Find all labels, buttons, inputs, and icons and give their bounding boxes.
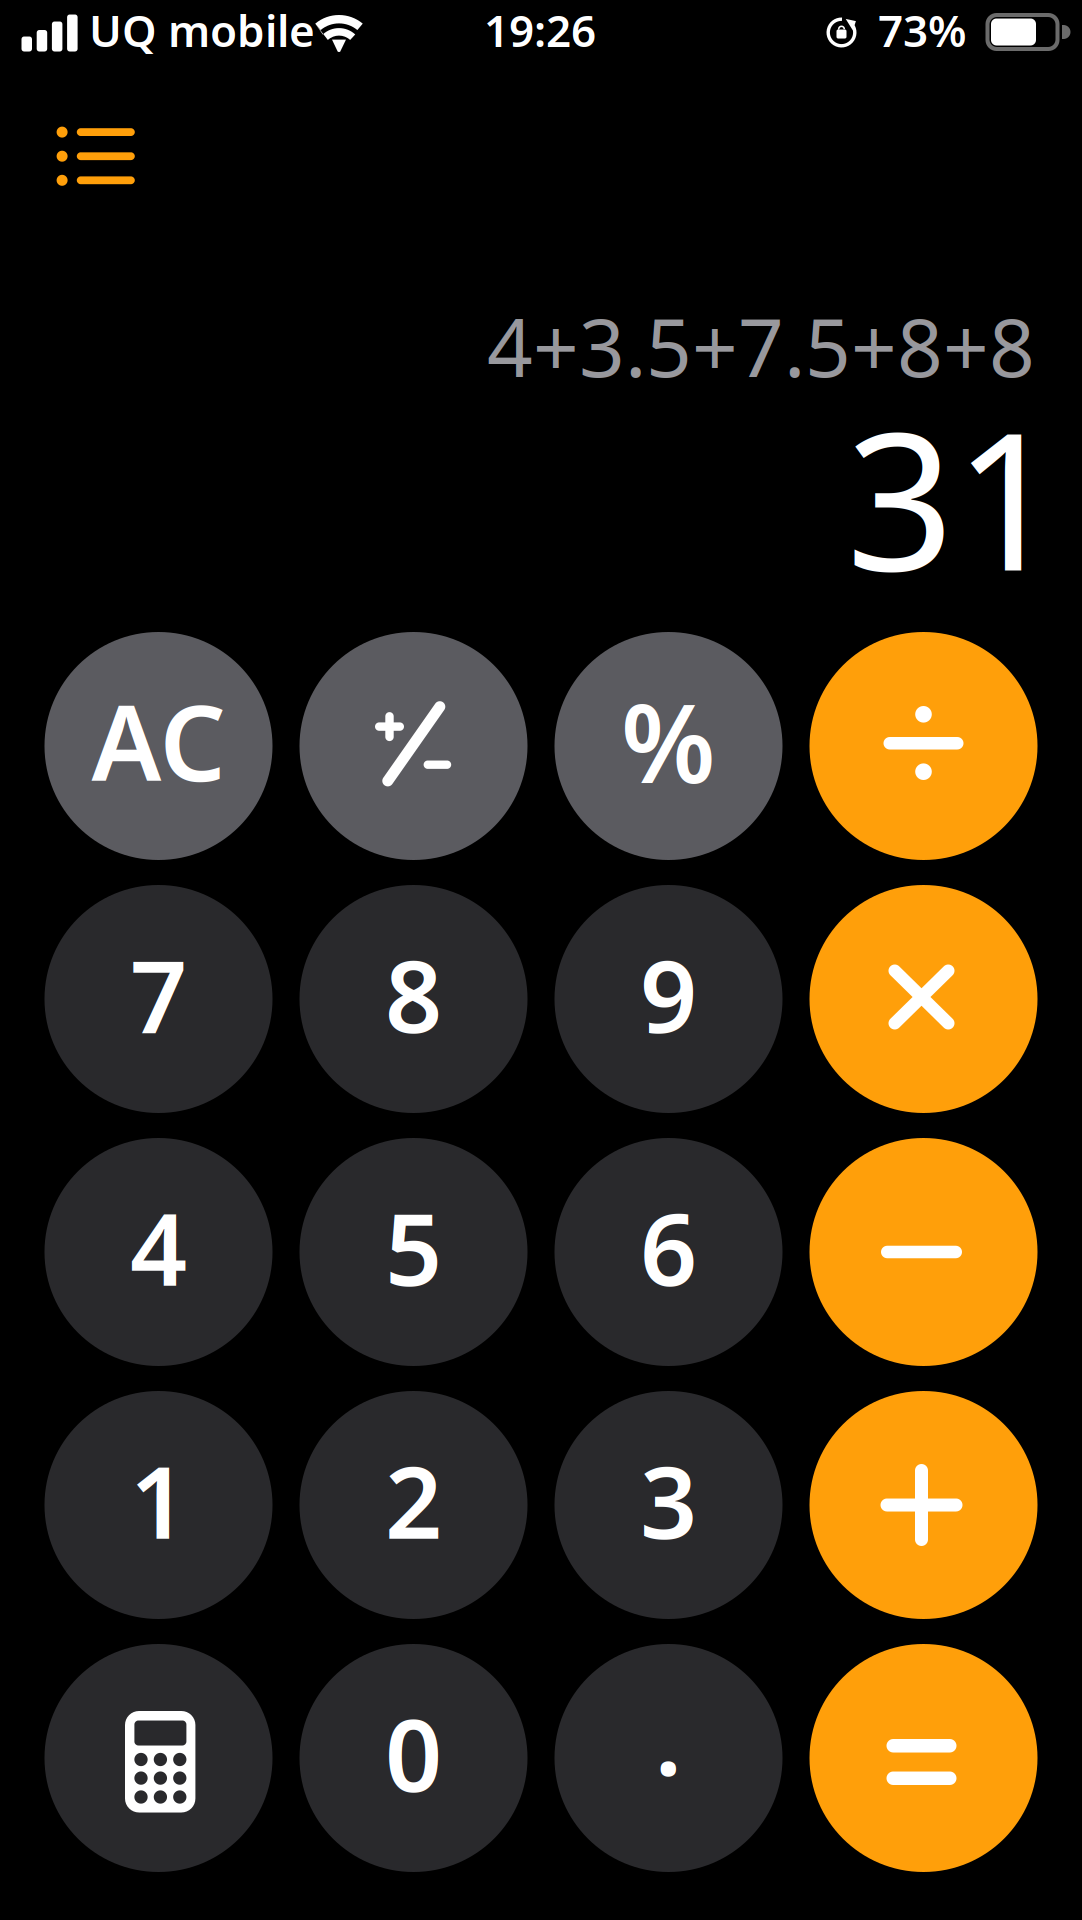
button[interactable]: Scientific calculator xyxy=(44,1644,272,1872)
button[interactable]: % xyxy=(554,632,782,860)
staticText: 4+3.5+7.5+8+8 xyxy=(487,293,1035,399)
staticText: UQ mobile xyxy=(89,1,315,59)
button[interactable]: 6 xyxy=(554,1138,782,1366)
button[interactable]: 7 xyxy=(44,885,272,1113)
button[interactable]: 3 xyxy=(554,1391,782,1619)
button[interactable]: 5 xyxy=(299,1138,527,1366)
staticText: 5 xyxy=(385,1181,442,1313)
button[interactable]: 0 xyxy=(299,1644,527,1872)
staticText: . xyxy=(654,1671,682,1803)
button[interactable]: Divide xyxy=(809,632,1037,860)
staticText: 73% xyxy=(878,1,967,59)
staticText: 2 xyxy=(385,1434,442,1566)
button[interactable]: Equals xyxy=(809,1644,1037,1872)
staticText: 7 xyxy=(130,928,187,1060)
button[interactable]: Plus minus xyxy=(299,632,527,860)
staticText: 8 xyxy=(385,928,442,1060)
staticText: 9 xyxy=(640,928,697,1060)
button[interactable]: History xyxy=(0,111,169,212)
staticText: 19:26 xyxy=(484,1,596,59)
staticText: 4 xyxy=(130,1181,187,1313)
button[interactable]: 2 xyxy=(299,1391,527,1619)
staticText: % xyxy=(621,669,716,813)
button[interactable]: AC xyxy=(44,632,272,860)
staticText: AC xyxy=(91,672,225,810)
staticText: 3 xyxy=(640,1434,697,1566)
button[interactable]: . xyxy=(554,1644,782,1872)
staticText: 0 xyxy=(385,1687,442,1819)
button[interactable]: 9 xyxy=(554,885,782,1113)
staticText: 1 xyxy=(130,1434,187,1566)
button[interactable]: 4 xyxy=(44,1138,272,1366)
staticText: 6 xyxy=(640,1181,697,1313)
button[interactable]: 8 xyxy=(299,885,527,1113)
button[interactable]: Minus xyxy=(809,1138,1037,1366)
button[interactable]: Multiply xyxy=(809,885,1037,1113)
button[interactable]: Plus xyxy=(809,1391,1037,1619)
staticText: 31 xyxy=(846,371,1062,623)
button[interactable]: 1 xyxy=(44,1391,272,1619)
